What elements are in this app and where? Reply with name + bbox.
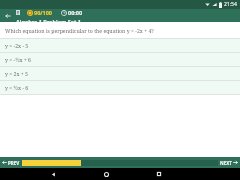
staticText: 90/100: [34, 9, 53, 16]
button[interactable]: Back: [45, 168, 61, 180]
staticText: Algebra 1 Problem Set 1: [16, 18, 81, 22]
button[interactable]: Recent apps: [151, 168, 167, 180]
button[interactable]: 90/100: [27, 9, 53, 16]
button[interactable]: y = -½x + 6: [0, 53, 240, 66]
button[interactable]: PREV: [2, 157, 20, 168]
button[interactable]: y = 2x + 5: [0, 67, 240, 80]
staticText: y = -2x - 5: [5, 42, 29, 49]
staticText: 21:54: [224, 1, 237, 8]
button[interactable]: 00:00: [61, 9, 83, 16]
staticText: y = 2x + 5: [5, 70, 28, 77]
button[interactable]: Home: [98, 168, 114, 180]
staticText: PREV: [8, 160, 20, 166]
staticText: Which equation is perpendicular to the e…: [5, 27, 154, 34]
staticText: y = ½x - 6: [5, 84, 29, 91]
staticText: y = -½x + 6: [5, 56, 31, 63]
button[interactable]: y = ½x - 6: [0, 81, 240, 94]
button[interactable]: NEXT: [220, 157, 238, 168]
button[interactable]: Back: [2, 10, 14, 22]
button[interactable]: y = -2x - 5: [0, 39, 240, 52]
staticText: NEXT: [220, 160, 232, 166]
staticText: 00:00: [68, 9, 83, 16]
